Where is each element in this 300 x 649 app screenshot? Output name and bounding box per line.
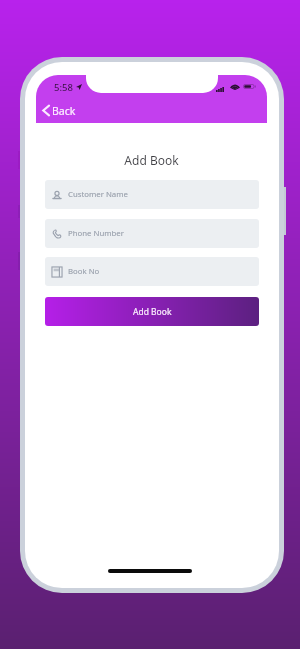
button[interactable]: Back [42, 101, 76, 120]
staticText: Book No [68, 266, 100, 277]
staticText: Add Book [36, 152, 267, 168]
button[interactable]: Add Book [45, 297, 259, 326]
staticText: 5:58 [54, 81, 73, 94]
staticText: Customer Name [68, 189, 128, 200]
button[interactable]: Book No [45, 257, 259, 286]
button[interactable]: Customer Name [45, 180, 259, 209]
staticText: Add Book [133, 306, 172, 318]
staticText: Back [52, 104, 76, 118]
button[interactable]: Phone Number [45, 219, 259, 248]
staticText: Phone Number [68, 228, 124, 239]
